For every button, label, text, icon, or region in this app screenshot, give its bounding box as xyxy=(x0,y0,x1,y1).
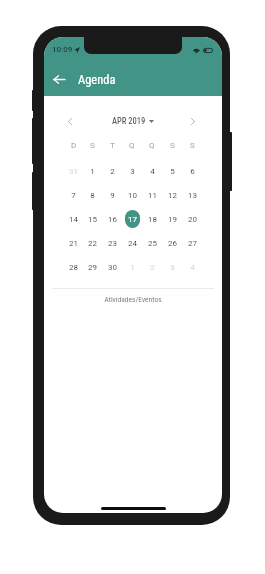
button[interactable]: 4 xyxy=(142,159,162,183)
button[interactable]: 1 xyxy=(122,255,142,279)
button[interactable]: 13 xyxy=(182,183,202,207)
button[interactable]: 4 xyxy=(182,255,202,279)
staticText: 29 xyxy=(88,263,97,272)
staticText: 3 xyxy=(170,263,175,272)
staticText: 8 xyxy=(90,191,95,200)
button[interactable]: 3 xyxy=(122,159,142,183)
staticText: 1 xyxy=(130,263,135,272)
staticText: Agenda xyxy=(78,72,116,87)
staticText: 30 xyxy=(108,263,117,272)
button[interactable]: 1 xyxy=(83,159,102,183)
button[interactable]: 9 xyxy=(102,183,122,207)
button[interactable]: 14 xyxy=(64,207,83,231)
staticText: 27 xyxy=(188,239,197,248)
staticText: Q xyxy=(149,141,155,150)
button[interactable]: 22 xyxy=(83,231,102,255)
staticText: 15 xyxy=(88,215,97,224)
button[interactable]: 27 xyxy=(182,231,202,255)
staticText: 19 xyxy=(168,215,177,224)
staticText: 1 xyxy=(90,167,95,176)
button[interactable]: 10 xyxy=(122,183,142,207)
button[interactable]: 12 xyxy=(162,183,182,207)
staticText: 4 xyxy=(150,167,155,176)
button[interactable]: 5 xyxy=(162,159,182,183)
button[interactable]: 2 xyxy=(102,159,122,183)
staticText: 13 xyxy=(188,191,197,200)
button[interactable]: 25 xyxy=(142,231,162,255)
button[interactable]: APR 2019 xyxy=(112,116,154,126)
staticText: 23 xyxy=(108,239,117,248)
button[interactable]: 28 xyxy=(64,255,83,279)
staticText: 17 xyxy=(128,215,137,224)
button[interactable]: 24 xyxy=(122,231,142,255)
staticText: 14 xyxy=(69,215,78,224)
button[interactable]: 19 xyxy=(162,207,182,231)
staticText: 31 xyxy=(69,167,78,176)
staticText: 11 xyxy=(148,191,157,200)
button[interactable]: 29 xyxy=(83,255,102,279)
staticText: 6 xyxy=(190,167,195,176)
button[interactable]: 20 xyxy=(182,207,202,231)
staticText: 21 xyxy=(69,239,78,248)
staticText: S xyxy=(90,141,95,150)
staticText: 4 xyxy=(190,263,195,272)
button[interactable]: 18 xyxy=(142,207,162,231)
staticText: 24 xyxy=(128,239,137,248)
button[interactable]: 11 xyxy=(142,183,162,207)
button[interactable]: 7 xyxy=(64,183,83,207)
staticText: S xyxy=(190,141,195,150)
staticText: 12 xyxy=(168,191,177,200)
button[interactable]: 2 xyxy=(142,255,162,279)
button[interactable]: Next month xyxy=(183,111,203,131)
staticText: 10 xyxy=(128,191,137,200)
staticText: 16 xyxy=(108,215,117,224)
button[interactable]: 21 xyxy=(64,231,83,255)
staticText: D xyxy=(71,141,77,150)
button[interactable]: 3 xyxy=(162,255,182,279)
staticText: 7 xyxy=(71,191,76,200)
button[interactable]: 23 xyxy=(102,231,122,255)
staticText: 22 xyxy=(88,239,97,248)
staticText: 9 xyxy=(110,191,115,200)
staticText: 2 xyxy=(110,167,115,176)
staticText: 26 xyxy=(168,239,177,248)
staticText: APR 2019 xyxy=(112,116,146,126)
staticText: S xyxy=(170,141,175,150)
button[interactable]: 31 xyxy=(64,159,83,183)
staticText: 18 xyxy=(148,215,157,224)
staticText: 10:09 xyxy=(52,45,73,54)
button[interactable]: 8 xyxy=(83,183,102,207)
staticText: 28 xyxy=(69,263,78,272)
button[interactable]: 15 xyxy=(83,207,102,231)
staticText: 3 xyxy=(130,167,135,176)
staticText: Q xyxy=(129,141,135,150)
button[interactable]: Previous month xyxy=(60,111,80,131)
button[interactable]: Back xyxy=(46,66,72,92)
staticText: 20 xyxy=(188,215,197,224)
button[interactable]: 30 xyxy=(102,255,122,279)
button[interactable]: 17 xyxy=(122,207,142,231)
button[interactable]: 26 xyxy=(162,231,182,255)
staticText: Atividades/Eventos xyxy=(44,295,222,304)
button[interactable]: 6 xyxy=(182,159,202,183)
staticText: T xyxy=(110,141,115,150)
staticText: 2 xyxy=(150,263,155,272)
button[interactable]: 16 xyxy=(102,207,122,231)
staticText: 25 xyxy=(148,239,157,248)
staticText: 5 xyxy=(170,167,175,176)
